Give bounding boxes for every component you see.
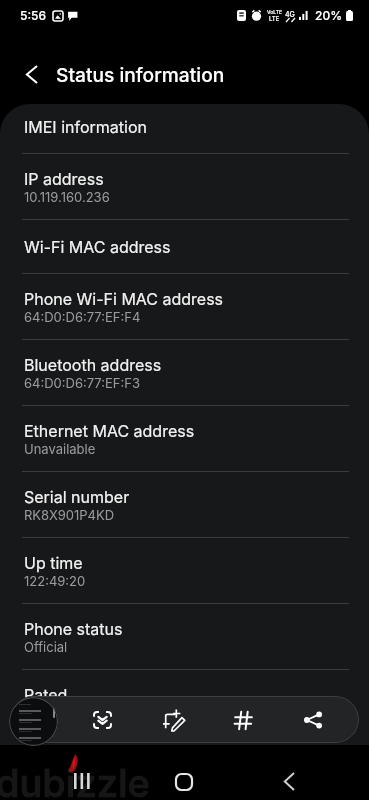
button[interactable]: Up time bbox=[0, 538, 369, 603]
staticText: Official bbox=[24, 639, 68, 655]
staticText: Unknown bbox=[24, 705, 83, 721]
button[interactable]: Screenshot preview bbox=[9, 697, 58, 746]
button[interactable]: Serial number bbox=[0, 472, 369, 537]
staticText: 64:D0:D6:77:EF:F3 bbox=[24, 375, 140, 391]
staticText: 64:D0:D6:77:EF:F4 bbox=[24, 309, 141, 325]
staticText: Unavailable bbox=[24, 441, 96, 457]
button[interactable]: Share bbox=[294, 701, 332, 739]
staticText: dubizzle bbox=[0, 760, 150, 800]
button[interactable]: Crop and edit bbox=[155, 701, 193, 739]
staticText: RK8X901P4KD bbox=[24, 507, 115, 523]
button[interactable]: Back bbox=[272, 764, 306, 798]
staticText: LTE bbox=[269, 15, 280, 22]
staticText: Device name bbox=[24, 736, 123, 741]
button[interactable]: Bluetooth address bbox=[0, 340, 369, 405]
staticText: Bluetooth address bbox=[24, 355, 162, 374]
staticText: Serial number bbox=[24, 487, 130, 506]
staticText: Phone Wi-Fi MAC address bbox=[24, 289, 224, 308]
staticText: 20% bbox=[315, 8, 343, 23]
staticText: Wi-Fi MAC address bbox=[24, 237, 171, 256]
staticText: Rated bbox=[24, 685, 68, 704]
button[interactable]: IP address bbox=[0, 154, 369, 219]
button[interactable]: Rated bbox=[0, 670, 369, 735]
staticText: 10.119.160.236 bbox=[24, 189, 110, 205]
staticText: VoLTE bbox=[267, 9, 282, 15]
staticText: Up time bbox=[24, 553, 83, 572]
button[interactable]: Phone Wi-Fi MAC address bbox=[0, 274, 369, 339]
button[interactable]: Back bbox=[9, 52, 53, 96]
button[interactable]: Device name bbox=[0, 736, 369, 741]
button[interactable]: Scroll capture bbox=[83, 701, 121, 739]
staticText: 5:56 bbox=[20, 8, 47, 23]
staticText: 122:49:20 bbox=[24, 573, 86, 589]
button[interactable]: Tags bbox=[224, 701, 262, 739]
button[interactable]: Recent apps bbox=[65, 764, 99, 798]
staticText: 4G bbox=[285, 10, 295, 18]
staticText: IMEI information bbox=[24, 117, 147, 136]
button[interactable]: Wi-Fi MAC address bbox=[0, 220, 369, 273]
staticText: Ethernet MAC address bbox=[24, 421, 195, 440]
button[interactable]: Ethernet MAC address bbox=[0, 406, 369, 471]
staticText: Phone status bbox=[24, 619, 123, 638]
button[interactable]: Home bbox=[166, 764, 202, 800]
button[interactable]: IMEI information bbox=[0, 104, 369, 153]
button[interactable]: Phone status bbox=[0, 604, 369, 669]
staticText: Status information bbox=[56, 63, 225, 86]
staticText: IP address bbox=[24, 169, 104, 188]
